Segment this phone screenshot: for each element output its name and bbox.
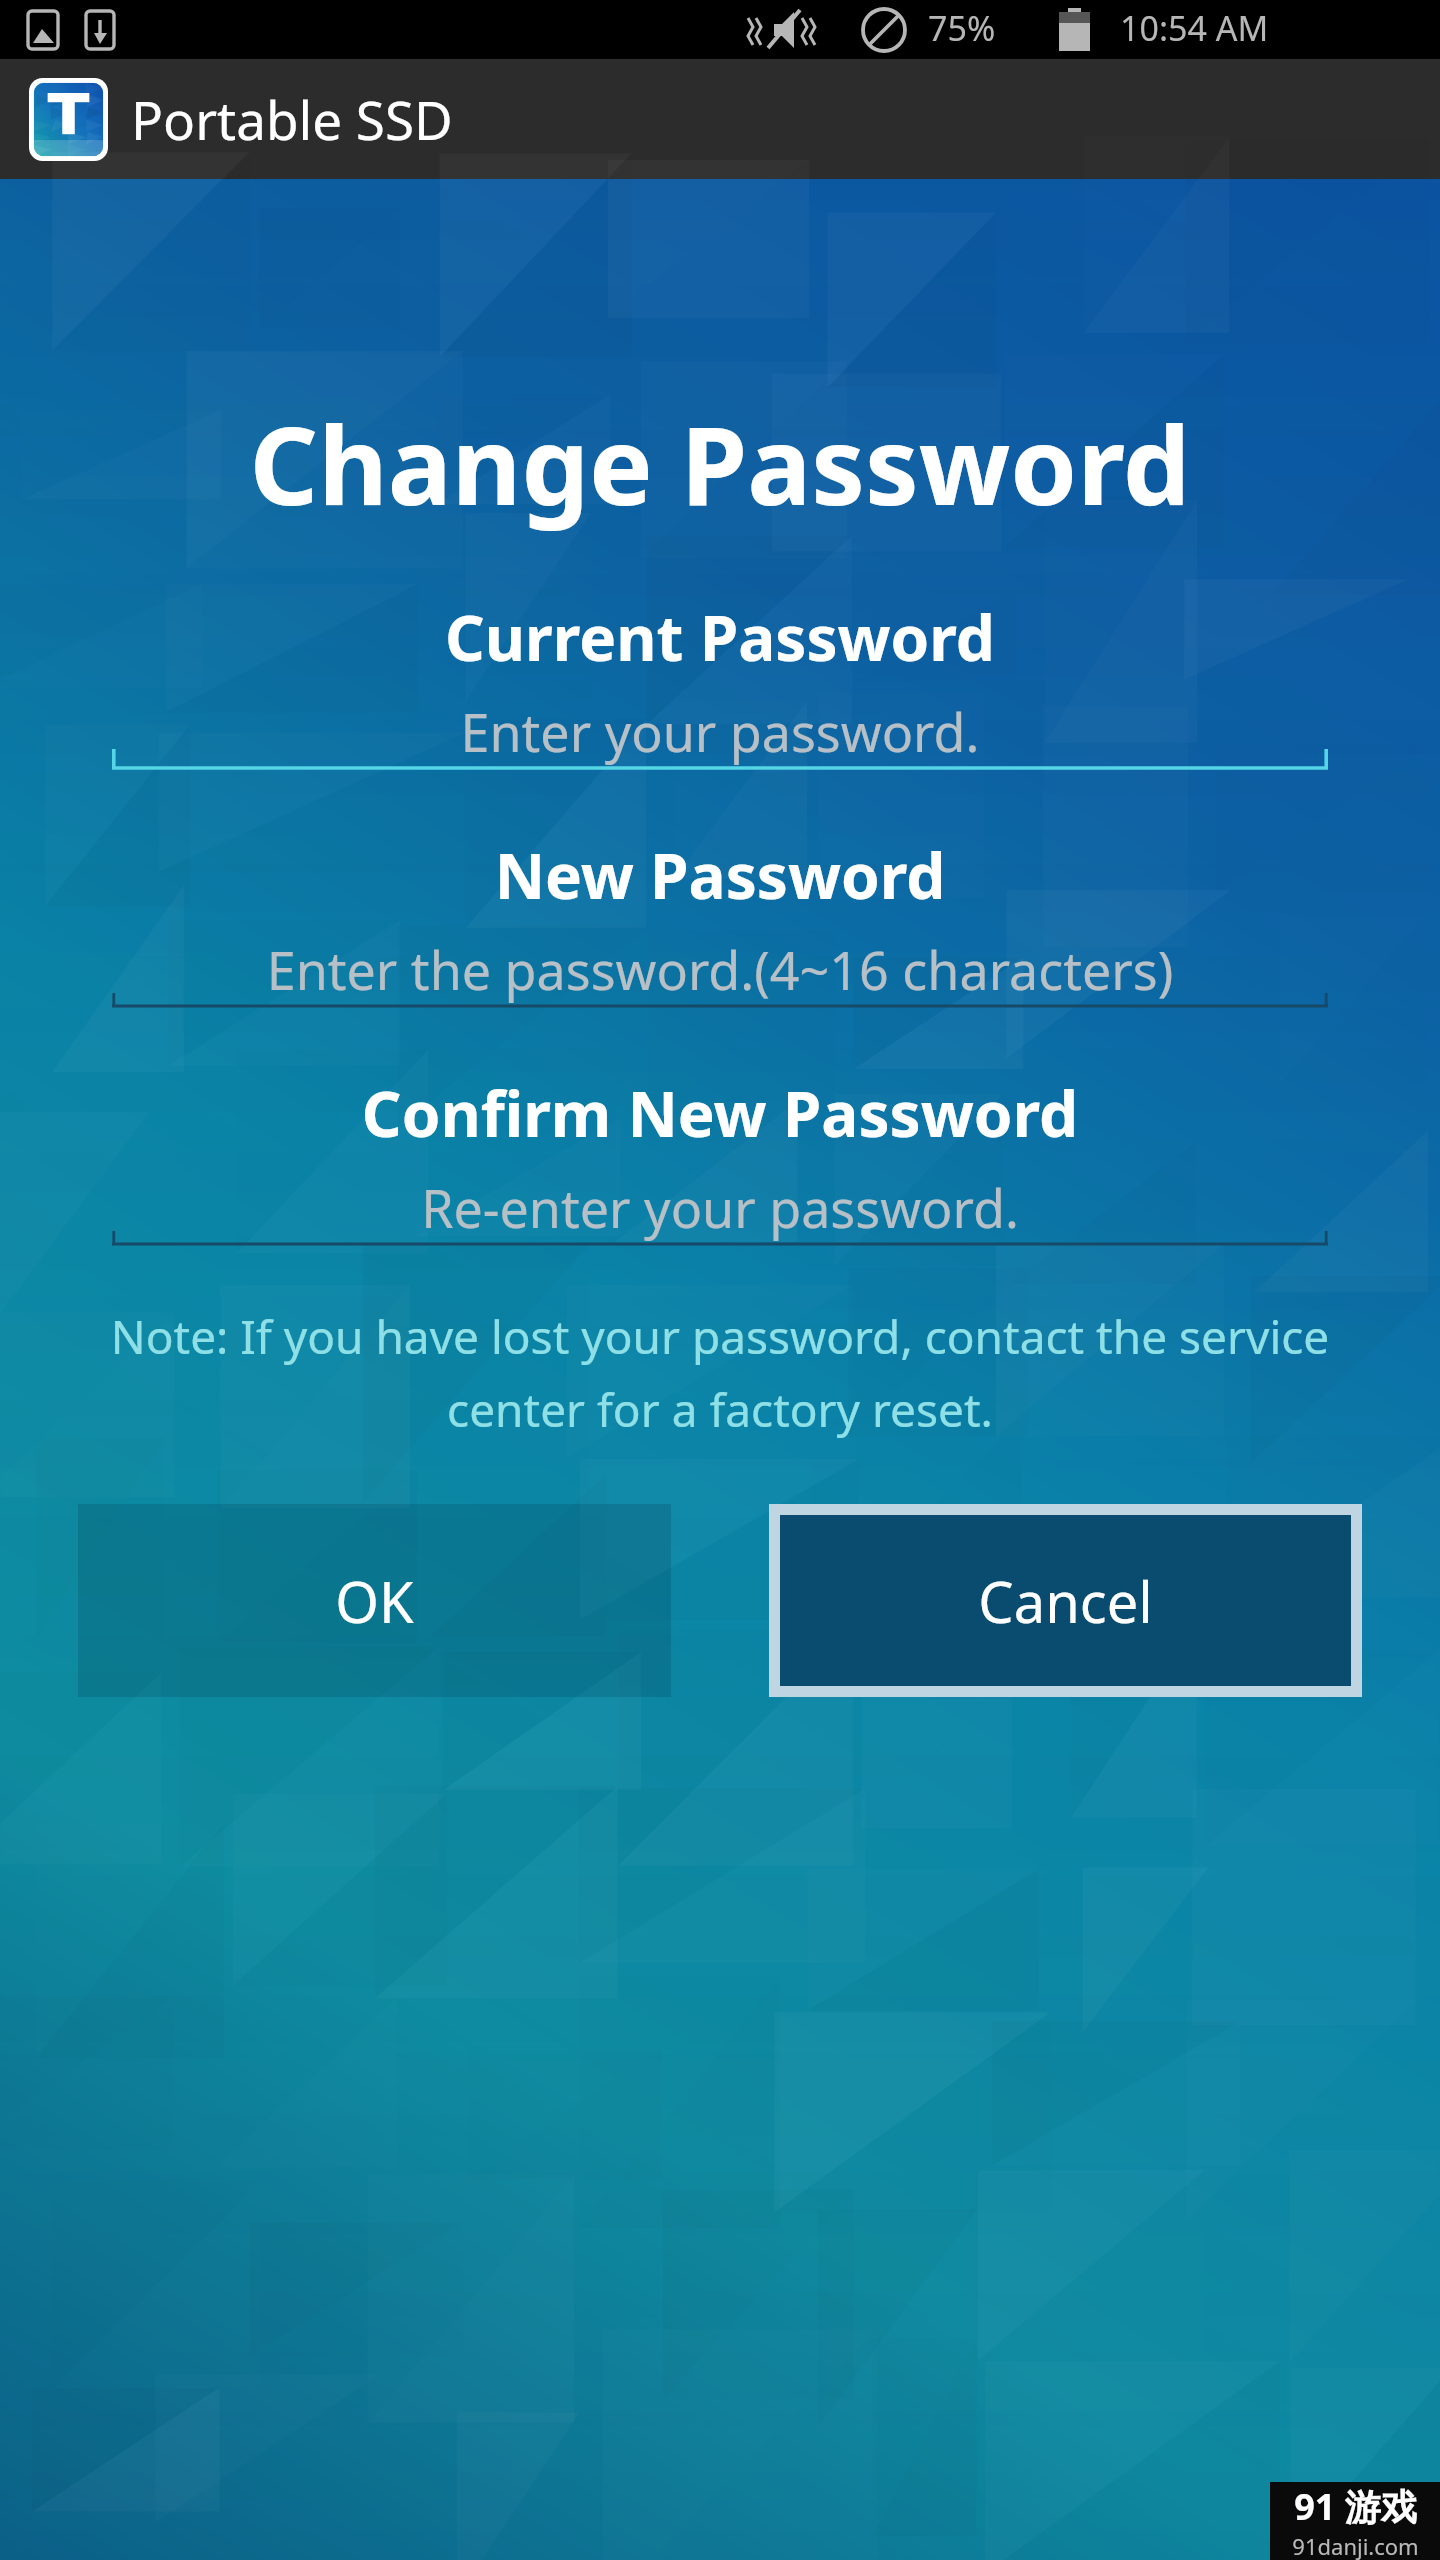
staticText: Portable SSD [131, 83, 453, 155]
staticText: Change Password [0, 391, 1440, 537]
staticText: New Password [112, 833, 1328, 917]
button[interactable]: Enter the password.(4~16 characters) [112, 929, 1328, 1009]
button[interactable]: OK [78, 1504, 671, 1697]
staticText: Enter your password. [112, 696, 1328, 767]
staticText: Re-enter your password. [112, 1172, 1328, 1243]
staticText: 91 游戏 [1294, 2482, 1417, 2531]
staticText: Note: If you have lost your password, co… [46, 1305, 1394, 1440]
button[interactable]: Cancel [780, 1515, 1351, 1686]
button[interactable]: Enter your password. [112, 691, 1328, 771]
button[interactable]: Re-enter your password. [112, 1167, 1328, 1247]
staticText: 10:54 AM [1120, 5, 1269, 51]
staticText: Confirm New Password [112, 1071, 1328, 1155]
staticText: 75% [928, 5, 996, 51]
staticText: Current Password [112, 595, 1328, 679]
staticText: Cancel [978, 1563, 1153, 1639]
staticText: 91danji.com [1292, 2531, 1419, 2560]
staticText: Enter the password.(4~16 characters) [112, 934, 1328, 1005]
staticText: OK [335, 1563, 414, 1639]
